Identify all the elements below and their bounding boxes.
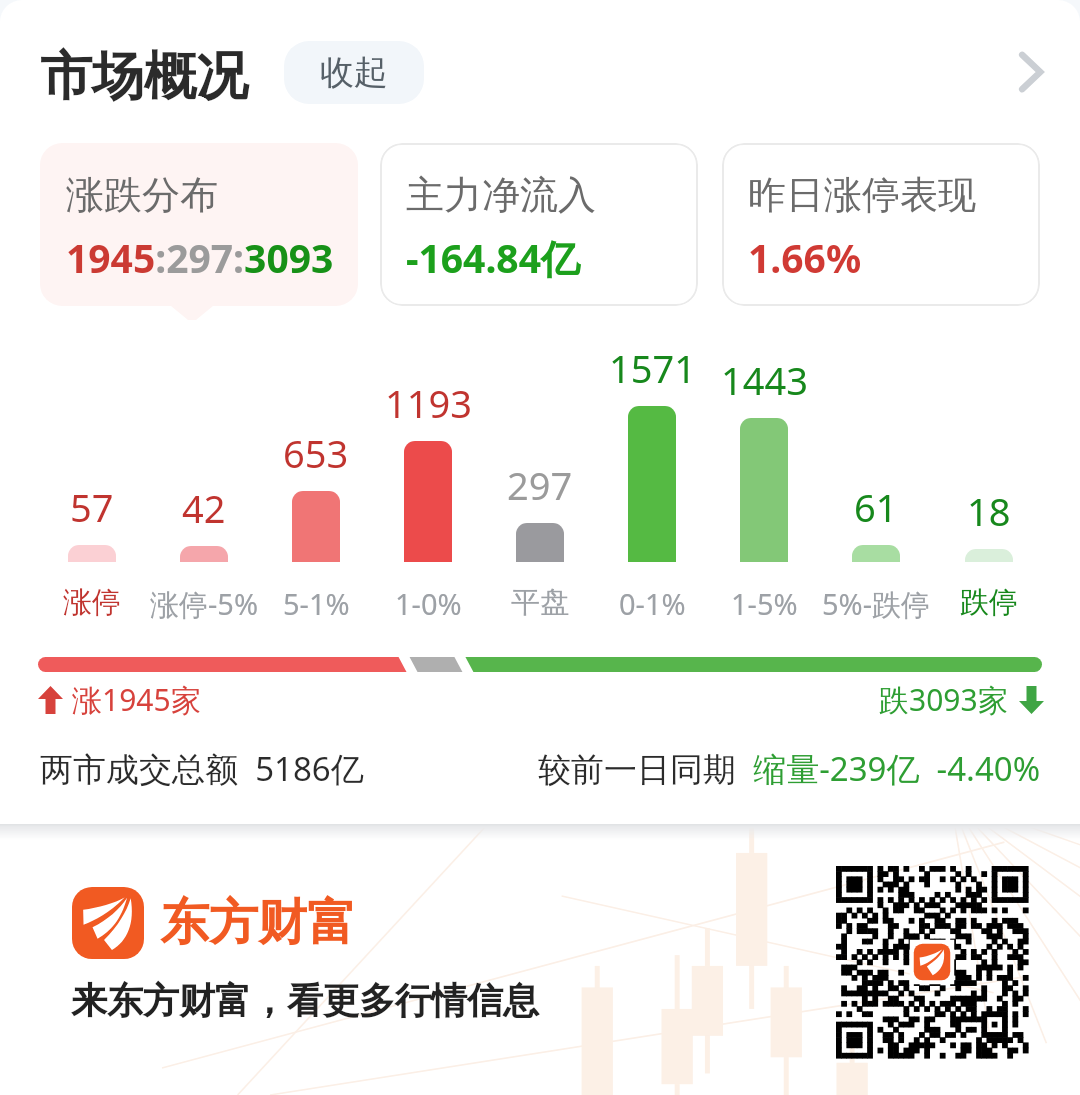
staticText: -164.84亿 [406,231,580,284]
staticText: 收起 [320,51,388,94]
staticText: 653 [283,427,349,479]
staticText: 1.66% [748,231,862,284]
staticText: 61 [854,481,898,533]
staticText: 涨停 [63,584,121,621]
staticText: 跌停 [960,584,1018,621]
staticText: 涨1945家 [72,679,201,720]
staticText: 1571 [609,342,696,394]
button[interactable]: 市场概况 [40,44,248,110]
staticText: 主力净流入 [406,171,596,219]
staticText: 297 [507,459,573,511]
staticText: 两市成交总额 5186亿 [40,746,364,791]
staticText: 平盘 [511,584,569,621]
staticText: 涨停-5% [150,584,259,624]
button[interactable]: 昨日涨停表现 [722,143,1040,306]
staticText: 东方财富 [160,892,356,954]
staticText: 1-0% [395,584,462,623]
staticText: 18 [967,485,1011,537]
staticText: 市场概况 [40,44,248,110]
staticText: 跌3093家 [879,679,1008,720]
staticText: 1-5% [731,584,798,623]
button[interactable]: 收起 [284,41,424,104]
staticText: 来东方财富，看更多行情信息 [71,978,539,1023]
staticText: 涨跌分布 [66,171,218,219]
button[interactable]: 跌3093家 [879,679,1044,720]
staticText: 较前一日同期 缩量-239亿 -4.40% [538,746,1041,791]
staticText: 5%-跌停 [822,584,931,624]
staticText: 昨日涨停表现 [748,171,976,219]
staticText: 1193 [385,377,472,429]
other: QR code [836,866,1028,1058]
button[interactable]: 涨跌分布 [40,143,358,306]
staticText: 5-1% [283,584,350,623]
button[interactable]: 涨1945家 [38,679,201,720]
staticText: 1443 [721,354,808,406]
staticText: 0-1% [619,584,686,623]
button[interactable]: 主力净流入 [380,143,698,306]
button[interactable]: 东方财富 [0,826,1080,1095]
staticText: 1945:297:3093 [66,231,334,284]
staticText: 42 [182,482,226,534]
button[interactable]: Open market overview [1000,41,1062,103]
staticText: 57 [70,481,114,533]
